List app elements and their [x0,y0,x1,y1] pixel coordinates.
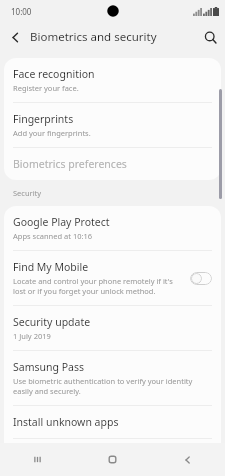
button[interactable]: Security update [4,306,221,350]
staticText: Google Play Protect [13,215,110,229]
staticText: Register your face. [13,83,79,93]
button[interactable]: Search [195,22,225,52]
staticText: Install unknown apps [13,415,119,429]
staticText: Security update [13,315,91,329]
staticText: Apps scanned at 10:16 [13,231,93,241]
staticText: Use biometric authentication to verify y… [13,376,212,396]
staticText: Security [13,188,42,198]
button[interactable]: Biometrics preferences [4,148,221,180]
staticText: Find My Mobile [13,260,89,274]
button[interactable]: Install unknown apps [4,406,221,438]
staticText: Face recognition [13,67,95,81]
staticText: Fingerprints [13,112,74,126]
button[interactable]: Face recognition [4,58,221,102]
staticText: Biometrics and security [30,29,195,45]
staticText: Add your fingerprints. [13,128,91,138]
button[interactable]: Find My Mobile toggle [190,272,212,285]
button[interactable]: Find My Mobile [4,251,221,305]
button[interactable]: Samsung Pass [4,351,221,405]
button[interactable]: Back [0,22,30,52]
staticText: Biometrics preferences [13,157,127,171]
button[interactable]: Fingerprints [4,103,221,147]
staticText: Samsung Pass [13,360,84,374]
staticText: Locate and control your phone remotely i… [13,276,184,296]
button[interactable]: Back [150,443,225,476]
button[interactable]: Home [75,443,150,476]
staticText: 1 July 2019 [13,331,51,341]
button[interactable]: Google Play Protect [4,206,221,250]
staticText: 10:00 [11,6,32,17]
button[interactable]: Recent apps [0,443,75,476]
